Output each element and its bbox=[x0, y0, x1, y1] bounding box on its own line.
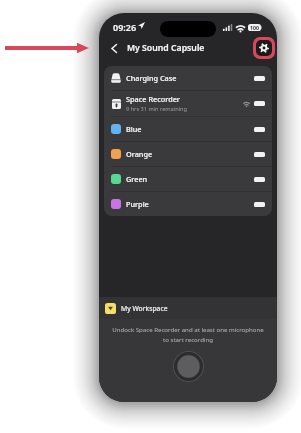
staticText: Blue bbox=[126, 124, 142, 134]
staticText: Green bbox=[126, 174, 148, 184]
staticText: Orange bbox=[126, 149, 153, 159]
button[interactable]: Orange bbox=[104, 142, 272, 166]
button[interactable]: Space Recorder bbox=[104, 91, 272, 116]
button[interactable]: Purple bbox=[104, 192, 272, 216]
staticText: 9 hrs 31 min remaining bbox=[126, 105, 187, 113]
staticText: Undock Space Recorder and at least one m… bbox=[112, 325, 264, 344]
button[interactable]: Record bbox=[173, 351, 204, 382]
button[interactable]: Blue bbox=[104, 117, 272, 141]
button[interactable]: Settings bbox=[256, 40, 272, 56]
staticText: Purple bbox=[126, 199, 149, 209]
staticText: Charging Case bbox=[126, 73, 177, 83]
button[interactable]: Green bbox=[104, 167, 272, 191]
staticText: 09:26 bbox=[113, 21, 137, 33]
button[interactable]: My Workspace bbox=[99, 297, 277, 319]
staticText: 100 bbox=[250, 24, 259, 31]
staticText: My Workspace bbox=[121, 304, 168, 313]
button[interactable]: Charging Case bbox=[104, 66, 272, 90]
button[interactable]: Back bbox=[106, 40, 122, 56]
staticText: Space Recorder bbox=[126, 94, 180, 104]
staticText: My Sound Capsule bbox=[127, 42, 205, 54]
